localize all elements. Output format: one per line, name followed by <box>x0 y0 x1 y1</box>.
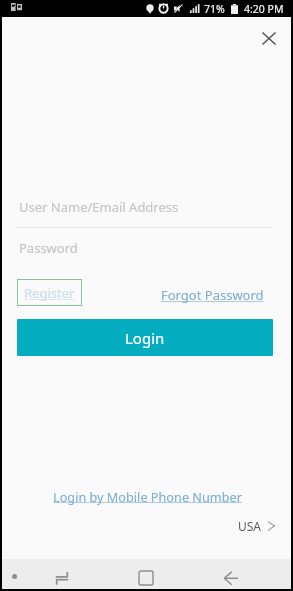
staticText: Password <box>19 239 78 257</box>
button[interactable]: Close <box>254 24 283 53</box>
button[interactable]: USA <box>233 513 280 539</box>
staticText: User Name/Email Address <box>19 198 179 216</box>
staticText: 4:20 PM <box>244 2 284 16</box>
button[interactable]: Home <box>132 564 160 591</box>
button[interactable]: Login by Mobile Phone Number <box>47 482 248 511</box>
button[interactable]: Back <box>217 564 245 591</box>
staticText: Login <box>125 328 165 348</box>
staticText: 71% <box>204 2 225 16</box>
button[interactable]: Forgot Password <box>157 282 268 308</box>
staticText: USA <box>238 518 262 534</box>
staticText: Login by Mobile Phone Number <box>53 488 242 505</box>
button[interactable]: Register <box>17 279 82 306</box>
staticText: Forgot Password <box>161 286 264 304</box>
staticText: Register <box>24 284 75 302</box>
button[interactable]: Login <box>17 319 273 356</box>
button[interactable]: Recents <box>48 564 76 591</box>
